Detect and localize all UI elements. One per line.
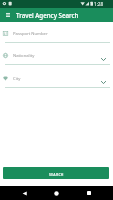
button[interactable]: Back [17, 186, 32, 200]
button[interactable]: Passport Number [0, 28, 113, 41]
button[interactable]: City [0, 73, 113, 86]
button[interactable]: Nationality [0, 50, 113, 63]
staticText: Nationality [13, 53, 35, 59]
staticText: SEARCH [49, 172, 64, 177]
staticText: Travel Agency Search [16, 11, 79, 19]
staticText: City [13, 76, 21, 82]
staticText: 1:28 [94, 1, 104, 7]
button[interactable]: SEARCH [3, 167, 109, 179]
button[interactable]: Home [49, 186, 64, 200]
button[interactable]: Open navigation menu [0, 8, 15, 22]
staticText: Passport Number [13, 31, 48, 37]
button[interactable]: Recent apps [81, 186, 96, 200]
